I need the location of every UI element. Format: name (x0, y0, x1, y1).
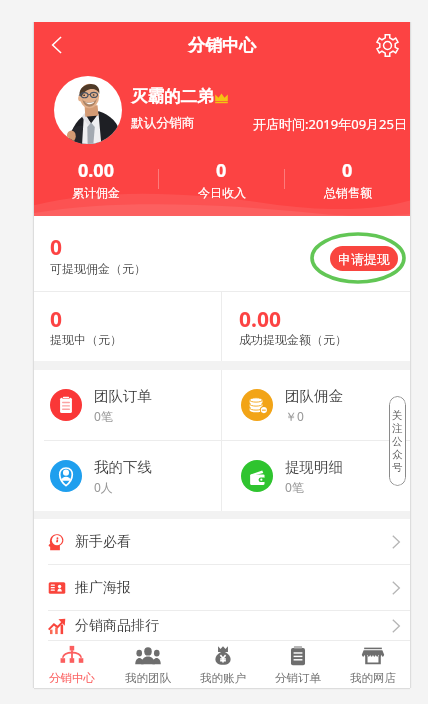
staticText: 分销中心 (49, 671, 95, 685)
button[interactable]: 推广海报 (34, 565, 410, 611)
button[interactable]: 分销中心 (34, 641, 110, 688)
staticText: 累计佣金 (72, 185, 120, 200)
staticText: 关 (392, 409, 403, 422)
button[interactable]: 关 (389, 396, 406, 486)
staticText: 0 (50, 233, 63, 262)
button[interactable]: 我的团队 (110, 641, 185, 688)
staticText: 0笔 (285, 479, 304, 495)
staticText: 分销商品排行 (75, 617, 159, 635)
staticText: 默认分销商 (131, 115, 195, 131)
staticText: 0人 (94, 479, 113, 495)
staticText: 我的团队 (125, 671, 171, 685)
button[interactable]: 我的网店 (335, 641, 410, 688)
staticText: ￥0 (285, 408, 304, 424)
button[interactable]: 0 (34, 292, 221, 361)
button[interactable]: 我的账户 (185, 641, 260, 688)
staticText: 0 (50, 305, 63, 334)
staticText: 提现明细 (285, 458, 343, 476)
staticText: 申请提现 (338, 251, 390, 267)
staticText: 注 (392, 422, 403, 435)
staticText: 众 (392, 448, 403, 461)
staticText: 0笔 (94, 408, 113, 424)
staticText: 新手必看 (75, 533, 131, 551)
staticText: 分销订单 (275, 671, 321, 685)
staticText: 0.00 (239, 305, 281, 334)
staticText: 开店时间:2019年09月25日 (253, 115, 407, 133)
staticText: 推广海报 (75, 579, 131, 597)
staticText: 提现中（元） (50, 332, 122, 347)
staticText: 我的账户 (200, 671, 246, 685)
button[interactable]: 0 (285, 155, 410, 203)
staticText: 公 (392, 435, 403, 448)
staticText: 我的网店 (350, 671, 396, 685)
button[interactable]: 申请提现 (330, 246, 398, 271)
staticText: 灭霸的二弟 (131, 86, 214, 107)
staticText: 团队订单 (94, 387, 152, 405)
staticText: 今日收入 (198, 185, 246, 200)
button[interactable]: Back (34, 22, 80, 68)
button[interactable]: 提现明细 (222, 441, 410, 511)
button[interactable]: Settings (364, 22, 410, 68)
staticText: 0 (216, 158, 227, 183)
button[interactable]: 团队佣金 (222, 370, 410, 440)
button[interactable]: 团队订单 (34, 370, 221, 440)
button[interactable]: 0 (159, 155, 284, 203)
button[interactable]: 0.00 (34, 155, 158, 203)
button[interactable]: 分销商品排行 (34, 611, 410, 641)
staticText: 成功提现金额（元） (239, 332, 347, 347)
staticText: 0.00 (78, 158, 114, 183)
button[interactable]: 0.00 (222, 292, 410, 361)
button[interactable]: 分销订单 (260, 641, 335, 688)
button[interactable]: 新手必看 (34, 519, 410, 565)
staticText: 总销售额 (324, 185, 372, 200)
staticText: 我的下线 (94, 458, 152, 476)
staticText: 号 (392, 461, 403, 474)
staticText: 可提现佣金（元） (50, 261, 146, 276)
button[interactable]: 我的下线 (34, 441, 221, 511)
staticText: 分销中心 (188, 35, 256, 56)
staticText: 团队佣金 (285, 387, 343, 405)
staticText: 0 (342, 158, 353, 183)
